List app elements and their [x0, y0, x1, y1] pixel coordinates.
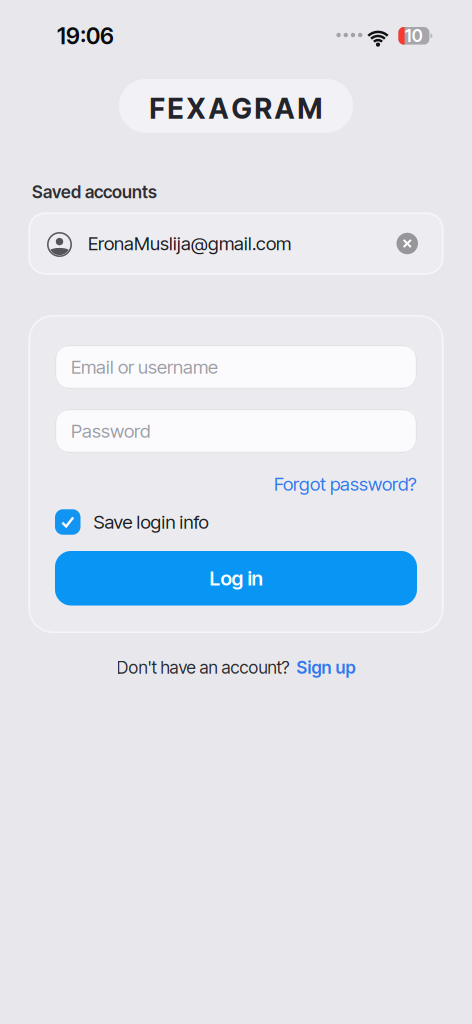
button[interactable]: Save login info — [55, 509, 208, 535]
button[interactable]: Password — [55, 409, 417, 453]
button[interactable]: Email or username — [55, 345, 417, 389]
staticText: 10 — [405, 26, 423, 46]
staticText: Forgot password? — [274, 473, 417, 495]
staticText: 19:06 — [57, 23, 114, 49]
staticText: Save login info — [93, 511, 208, 533]
button[interactable]: EronaMuslija@gmail.com — [28, 212, 443, 274]
staticText: EronaMuslija@gmail.com — [88, 232, 291, 254]
staticText: Saved accounts — [32, 182, 157, 202]
staticText: Sign up — [296, 657, 355, 678]
staticText: Log in — [209, 566, 262, 590]
staticText: Don't have an account? — [116, 657, 289, 678]
button[interactable]: Forgot password? — [274, 473, 417, 495]
staticText: Password — [71, 420, 150, 442]
button[interactable]: Remove saved account — [396, 233, 418, 254]
staticText: Email or username — [71, 356, 218, 378]
staticText: F E X A G R A M — [149, 92, 322, 125]
button[interactable]: Log in — [55, 551, 417, 605]
button[interactable]: Sign up — [296, 657, 355, 678]
